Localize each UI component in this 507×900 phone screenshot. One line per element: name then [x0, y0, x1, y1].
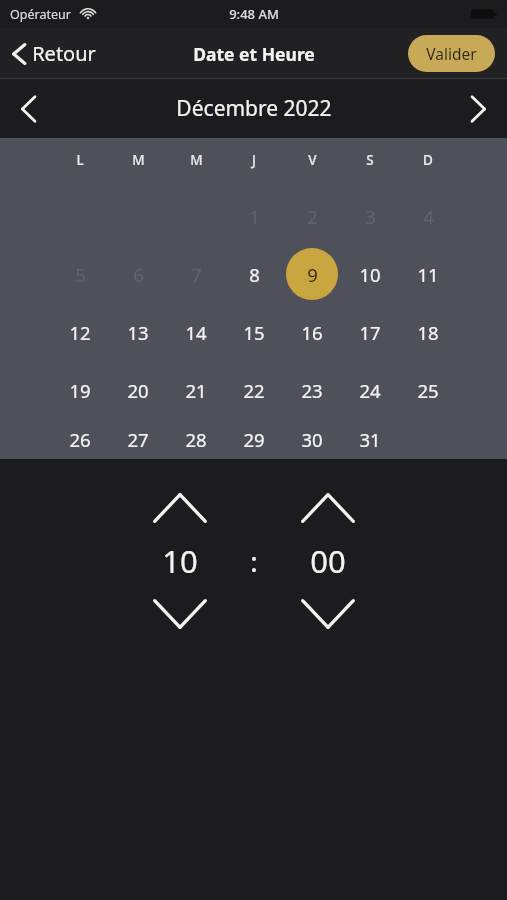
staticText: 13	[127, 320, 149, 345]
staticText: 16	[301, 320, 323, 345]
staticText: Retour	[32, 40, 96, 67]
button[interactable]: Augmenter les minutes	[292, 485, 364, 531]
button[interactable]: Augmenter les heures	[144, 485, 216, 531]
staticText: M	[132, 151, 145, 169]
staticText: 23	[301, 378, 323, 403]
staticText: 5	[75, 262, 86, 287]
staticText: 24	[359, 378, 381, 403]
staticText: 15	[243, 320, 265, 345]
button[interactable]: 31	[341, 419, 399, 459]
staticText: 9	[307, 262, 318, 287]
button[interactable]: 15	[225, 303, 283, 361]
button[interactable]: 11	[399, 245, 457, 303]
button[interactable]: 18	[399, 303, 457, 361]
staticText: D	[423, 151, 433, 169]
staticText: Valider	[426, 43, 477, 64]
button[interactable]: 29	[225, 419, 283, 459]
staticText: 18	[417, 320, 439, 345]
button[interactable]: 25	[399, 361, 457, 419]
button[interactable]: 16	[283, 303, 341, 361]
staticText: 31	[359, 427, 381, 452]
button[interactable]: 30	[283, 419, 341, 459]
button[interactable]: 24	[341, 361, 399, 419]
staticText: J	[252, 151, 256, 169]
staticText: 26	[69, 427, 91, 452]
staticText: 3	[365, 204, 376, 229]
staticText: 1	[249, 204, 260, 229]
button[interactable]: 19	[51, 361, 109, 419]
staticText: 22	[243, 378, 265, 403]
staticText: 27	[127, 427, 149, 452]
staticText: V	[308, 151, 317, 169]
button[interactable]: 9	[283, 245, 341, 303]
staticText: 11	[417, 262, 439, 287]
staticText: 9:48 AM	[229, 5, 279, 23]
button[interactable]: Retour	[8, 36, 100, 71]
button[interactable]: 13	[109, 303, 167, 361]
staticText: 12	[69, 320, 91, 345]
staticText: S	[366, 151, 374, 169]
staticText: 28	[185, 427, 207, 452]
button[interactable]: 12	[51, 303, 109, 361]
staticText: 14	[185, 320, 207, 345]
button[interactable]: 28	[167, 419, 225, 459]
staticText: 20	[127, 378, 149, 403]
button[interactable]: Mois suivant	[458, 82, 499, 136]
staticText: 8	[249, 262, 260, 287]
staticText: 10	[359, 262, 381, 287]
button[interactable]: Diminuer les heures	[144, 591, 216, 637]
button[interactable]: 17	[341, 303, 399, 361]
button[interactable]: 14	[167, 303, 225, 361]
button[interactable]: 27	[109, 419, 167, 459]
button[interactable]: 10	[341, 245, 399, 303]
button[interactable]: 20	[109, 361, 167, 419]
staticText: Décembre 2022	[176, 94, 332, 123]
button[interactable]: 22	[225, 361, 283, 419]
button[interactable]: 23	[283, 361, 341, 419]
staticText: 6	[133, 262, 144, 287]
staticText: Date et Heure	[193, 42, 315, 66]
button[interactable]: Valider	[408, 35, 495, 72]
button[interactable]: Diminuer les minutes	[292, 591, 364, 637]
staticText: 2	[307, 204, 318, 229]
staticText: 30	[301, 427, 323, 452]
staticText: Opérateur	[10, 6, 71, 23]
staticText: 17	[359, 320, 381, 345]
staticText: 25	[417, 378, 439, 403]
button[interactable]: 21	[167, 361, 225, 419]
staticText: 00	[310, 540, 346, 582]
staticText: 7	[191, 262, 202, 287]
staticText: 21	[185, 378, 207, 403]
button[interactable]: 26	[51, 419, 109, 459]
staticText: 29	[243, 427, 265, 452]
staticText: M	[190, 151, 203, 169]
staticText: 4	[423, 204, 434, 229]
button[interactable]: Mois précédent	[8, 82, 49, 136]
staticText: 19	[69, 378, 91, 403]
staticText: 10	[162, 540, 198, 582]
button[interactable]: 8	[225, 245, 283, 303]
staticText: :	[250, 542, 258, 580]
staticText: L	[76, 151, 84, 169]
